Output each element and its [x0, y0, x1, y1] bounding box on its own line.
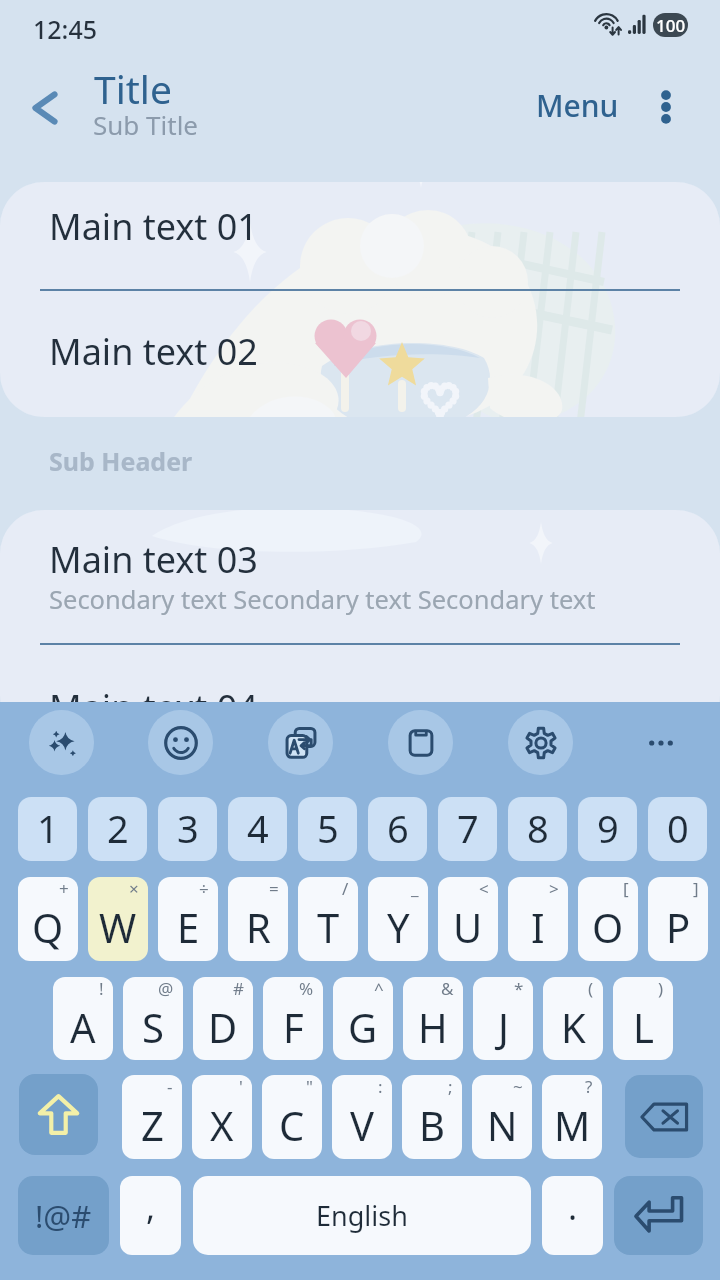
staticText: × [129, 877, 139, 900]
staticText: B [419, 1098, 445, 1152]
button[interactable]: , [120, 1176, 181, 1255]
staticText: A [70, 1000, 96, 1054]
button[interactable]: % [263, 977, 323, 1060]
button[interactable]: Suggestions [29, 710, 94, 775]
button[interactable]: ^ [333, 977, 393, 1060]
staticText: [ [623, 877, 629, 900]
button[interactable]: Settings [508, 710, 573, 775]
staticText: / [342, 877, 349, 900]
button[interactable]: ! [53, 977, 113, 1060]
button[interactable]: * [473, 977, 533, 1060]
button[interactable]: " [262, 1075, 322, 1159]
staticText: R [246, 900, 271, 954]
staticText: & [441, 977, 454, 1000]
staticText: _ [411, 877, 419, 900]
button[interactable]: Shift [19, 1074, 98, 1155]
staticText: Menu [536, 85, 619, 126]
button[interactable]: Translate [268, 710, 333, 775]
button[interactable]: [ [578, 877, 638, 961]
button[interactable]: Emoji [148, 710, 213, 775]
staticText: ) [658, 977, 664, 1000]
button[interactable]: / [298, 877, 358, 961]
button[interactable]: Main text 04 [0, 646, 720, 740]
button[interactable]: Menu [524, 75, 631, 136]
button[interactable]: . [542, 1176, 603, 1255]
button[interactable]: Clipboard [388, 710, 453, 775]
staticText: 3 [177, 802, 199, 854]
staticText: L [633, 1000, 654, 1054]
staticText: W [99, 900, 137, 954]
button[interactable]: ' [192, 1075, 252, 1159]
button[interactable]: & [403, 977, 463, 1060]
staticText: - [167, 1075, 173, 1098]
button[interactable]: 7 [438, 797, 497, 861]
staticText: O [592, 900, 624, 954]
staticText: T [317, 900, 340, 954]
staticText: * [514, 977, 524, 1000]
button[interactable]: 5 [298, 797, 357, 861]
staticText: : [378, 1075, 383, 1098]
button[interactable]: × [88, 877, 148, 961]
button[interactable]: 3 [158, 797, 217, 861]
staticText: 5 [317, 802, 339, 854]
staticText: ^ [374, 977, 384, 1000]
button[interactable]: Main text 01 [0, 182, 720, 290]
button[interactable]: + [18, 877, 78, 961]
staticText: P [666, 900, 691, 954]
button[interactable]: 6 [368, 797, 427, 861]
staticText: 12:45 [33, 12, 98, 46]
button[interactable]: _ [368, 877, 428, 961]
staticText: C [279, 1098, 305, 1152]
button[interactable]: ÷ [158, 877, 218, 961]
button[interactable]: < [438, 877, 498, 961]
button[interactable]: Back [15, 76, 79, 140]
button[interactable]: 4 [228, 797, 287, 861]
button[interactable]: 1 [18, 797, 77, 861]
button[interactable]: 0 [648, 797, 707, 861]
staticText: F [283, 1000, 304, 1054]
button[interactable]: English [193, 1176, 531, 1255]
staticText: ÷ [199, 877, 209, 900]
button[interactable]: @ [123, 977, 183, 1060]
button[interactable]: Symbols [18, 1176, 109, 1255]
button[interactable]: ~ [472, 1075, 532, 1159]
button[interactable]: Main text 03 [0, 510, 720, 644]
staticText: Main text 04 [49, 683, 258, 732]
staticText: 4 [247, 802, 269, 854]
button[interactable]: More [628, 710, 693, 775]
staticText: , [146, 1184, 156, 1230]
button[interactable]: 8 [508, 797, 567, 861]
button[interactable]: > [508, 877, 568, 961]
button[interactable]: ; [402, 1075, 462, 1159]
staticText: Main text 03 [49, 535, 258, 584]
button[interactable]: Backspace [625, 1075, 703, 1158]
staticText: 0 [667, 802, 689, 854]
button[interactable]: 2 [88, 797, 147, 861]
button[interactable]: ) [613, 977, 673, 1060]
button[interactable]: ( [543, 977, 603, 1060]
staticText: ? [585, 1075, 593, 1098]
staticText: + [59, 877, 69, 900]
button[interactable]: Main text 02 [0, 292, 720, 417]
button[interactable]: Enter [614, 1176, 703, 1255]
button[interactable]: ? [542, 1075, 602, 1159]
button[interactable]: # [193, 977, 253, 1060]
staticText: English [316, 1197, 408, 1234]
staticText: Q [32, 900, 64, 954]
staticText: % [299, 977, 314, 1000]
button[interactable]: 9 [578, 797, 637, 861]
staticText: K [561, 1000, 586, 1054]
staticText: ! [99, 977, 104, 1000]
staticText: > [549, 877, 559, 900]
button[interactable]: - [122, 1075, 182, 1159]
staticText: 1 [37, 802, 59, 854]
button[interactable]: ] [648, 877, 708, 961]
staticText: X [210, 1098, 234, 1152]
button[interactable]: = [228, 877, 288, 961]
button[interactable]: : [332, 1075, 392, 1159]
staticText: 6 [387, 802, 409, 854]
button[interactable]: More options [634, 75, 698, 139]
staticText: Main text 02 [49, 327, 258, 376]
staticText: !@# [35, 1195, 92, 1237]
staticText: 8 [527, 802, 549, 854]
